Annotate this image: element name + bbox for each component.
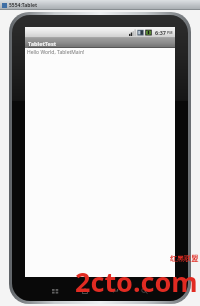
button[interactable]: Home [81, 288, 89, 294]
staticText: PM [167, 30, 173, 35]
other: Network [137, 29, 144, 36]
staticText: Hello World, TabletMain! [27, 49, 85, 56]
button[interactable]: Search [141, 288, 148, 294]
staticText: TabletTest [28, 40, 57, 47]
other: Signal strength [129, 29, 136, 36]
staticText: 5554:Tablet [9, 2, 38, 9]
button[interactable]: TabletTest [25, 38, 175, 48]
button[interactable]: Menu [52, 289, 59, 294]
button[interactable]: Back [111, 288, 119, 294]
staticText: 2cto.com [75, 263, 198, 300]
staticText: 6:37 [155, 29, 166, 36]
other: Battery [145, 29, 152, 36]
staticText: 红黑联盟 [170, 254, 198, 263]
button[interactable]: 5554:Tablet [0, 0, 200, 10]
